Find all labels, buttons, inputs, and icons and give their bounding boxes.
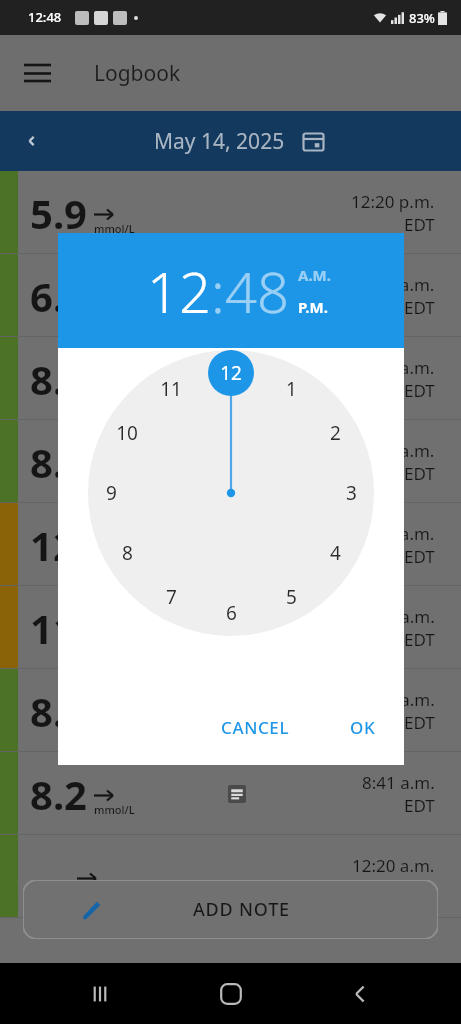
staticText: 8.2 (30, 767, 87, 821)
staticText: 12 (220, 360, 242, 386)
button[interactable]: P.M. (298, 297, 328, 317)
staticText: 12:20 a.m. (352, 854, 435, 877)
button[interactable]: 9 (90, 472, 132, 514)
staticText: EDT (404, 462, 435, 485)
staticText: — (30, 850, 70, 904)
staticText: EDT (404, 877, 435, 900)
staticText: EDT (404, 379, 435, 402)
staticText: EDT (404, 794, 435, 817)
staticText: ADD NOTE (193, 897, 290, 922)
staticText: Logbook (94, 59, 181, 88)
button[interactable]: Recents (78, 972, 122, 1016)
staticText: OK (350, 716, 376, 739)
button[interactable]: Previous day (10, 119, 54, 163)
button[interactable]: Open navigation menu (12, 48, 62, 98)
staticText: 11 (160, 376, 182, 402)
button[interactable]: Home (209, 972, 253, 1016)
staticText: May 14, 2025 (154, 127, 285, 156)
button[interactable]: 48 (225, 253, 289, 329)
staticText: 8.9 (30, 684, 87, 738)
button[interactable]: 10 (106, 412, 148, 454)
staticText: 10:02 a.m. (352, 522, 435, 545)
button[interactable]: 11 (150, 368, 192, 410)
staticText: 9:33 a.m. (362, 605, 435, 628)
button[interactable]: Back (339, 972, 383, 1016)
button[interactable]: 4 (314, 532, 356, 574)
staticText: mmol/L (94, 802, 135, 817)
button[interactable]: 5.9 (0, 171, 461, 254)
staticText: mmol/L (117, 553, 158, 568)
staticText: EDT (404, 213, 435, 236)
staticText: 1 (286, 376, 297, 402)
staticText: 12:48 (28, 8, 62, 26)
staticText: 4 (330, 540, 341, 566)
button[interactable]: 8.9 (0, 669, 461, 752)
button[interactable]: CANCEL (207, 706, 304, 749)
staticText: 5 (286, 584, 297, 610)
staticText: : (211, 253, 225, 329)
staticText: 2 (330, 420, 341, 446)
staticText: EDT (404, 545, 435, 568)
button[interactable]: 2 (314, 412, 356, 454)
button[interactable]: 12.4 (0, 503, 461, 586)
staticText: 9 (106, 480, 117, 506)
staticText: 3 (346, 480, 357, 506)
staticText: 10 (116, 420, 138, 446)
button[interactable]: OK (336, 706, 390, 749)
button[interactable]: 3 (330, 472, 372, 514)
button[interactable]: 12 (210, 352, 252, 394)
staticText: CANCEL (221, 716, 290, 739)
staticText: 8.6 (30, 435, 87, 489)
button[interactable]: A.M. (298, 265, 331, 285)
staticText: 10:31 a.m. (352, 439, 435, 462)
staticText: mmol/L (94, 387, 135, 402)
staticText: 6 (226, 600, 237, 626)
button[interactable]: 8 (106, 532, 148, 574)
staticText: 9:07 a.m. (362, 688, 435, 711)
button[interactable]: 6.4 (0, 254, 461, 337)
staticText: 8 (122, 540, 133, 566)
button[interactable]: 12 (147, 253, 211, 329)
staticText: 12.4 (30, 518, 110, 572)
staticText: EDT (404, 711, 435, 734)
button[interactable]: 8.2 (0, 752, 461, 835)
button[interactable]: 6 (210, 592, 252, 634)
staticText: 6.4 (30, 269, 87, 323)
staticText: 11:05 a.m. (352, 356, 435, 379)
staticText: EDT (404, 628, 435, 651)
button[interactable]: — (0, 835, 461, 918)
button[interactable]: 7 (150, 576, 192, 618)
staticText: 12:20 p.m. (351, 190, 435, 213)
button[interactable]: ADD NOTE (23, 880, 438, 939)
button[interactable]: 8.6 (0, 420, 461, 503)
button[interactable]: 1 (270, 368, 312, 410)
staticText: 8.1 (30, 352, 87, 406)
staticText: EDT (404, 296, 435, 319)
staticText: 7 (166, 584, 177, 610)
button[interactable]: 11.8 (0, 586, 461, 669)
staticText: 5.9 (30, 186, 87, 240)
staticText: mmol/L (94, 221, 135, 236)
staticText: 11:42 a.m. (352, 273, 435, 296)
staticText: 83% (409, 9, 435, 27)
staticText: 11.8 (30, 601, 110, 655)
button[interactable]: 8.1 (0, 337, 461, 420)
button[interactable]: May 14, 2025 (154, 127, 324, 156)
button[interactable]: 5 (270, 576, 312, 618)
staticText: 8:41 a.m. (362, 771, 435, 794)
